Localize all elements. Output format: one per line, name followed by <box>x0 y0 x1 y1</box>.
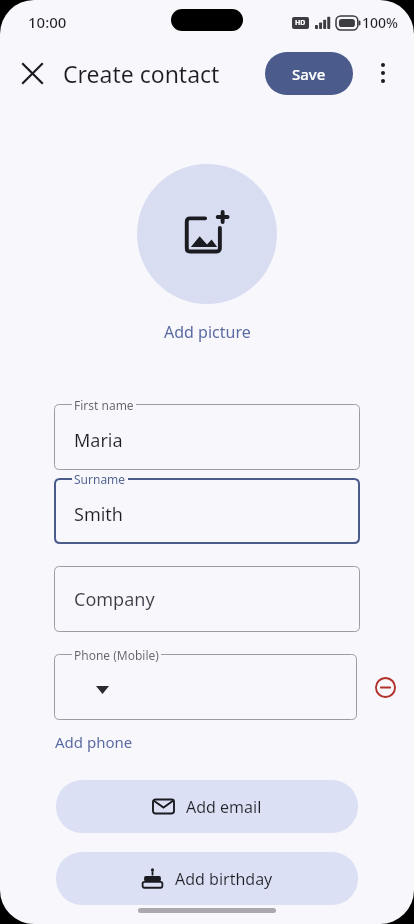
staticText: Add phone <box>55 732 133 752</box>
staticText: Maria <box>74 428 123 453</box>
staticText: 10:00 <box>28 12 67 32</box>
staticText: Save <box>292 64 326 84</box>
staticText: First name <box>74 397 134 413</box>
staticText: Add birthday <box>175 868 273 890</box>
staticText: 100% <box>362 13 398 32</box>
staticText: Phone (Mobile) <box>74 647 159 663</box>
button[interactable]: Remove phone <box>369 671 401 703</box>
button[interactable]: More options <box>360 50 406 96</box>
button[interactable]: Company <box>54 566 360 632</box>
staticText: Create contact <box>63 58 220 89</box>
button[interactable]: Phone (Mobile) <box>54 654 357 720</box>
button[interactable]: Add picture <box>156 318 259 346</box>
button[interactable]: Add birthday <box>56 852 358 905</box>
button[interactable]: Add picture <box>137 164 277 304</box>
staticText: Add email <box>186 796 262 818</box>
button[interactable]: Add phone <box>47 728 141 756</box>
staticText: HD <box>295 18 306 28</box>
staticText: Surname <box>74 471 126 487</box>
button[interactable]: Save <box>265 52 353 95</box>
staticText: Add picture <box>164 321 251 343</box>
button[interactable]: First name <box>54 404 360 470</box>
staticText: Smith <box>74 502 123 527</box>
button[interactable]: Close <box>10 51 54 95</box>
button[interactable]: Add email <box>56 780 358 833</box>
button[interactable]: Surname <box>54 478 360 544</box>
staticText: Company <box>74 587 155 612</box>
